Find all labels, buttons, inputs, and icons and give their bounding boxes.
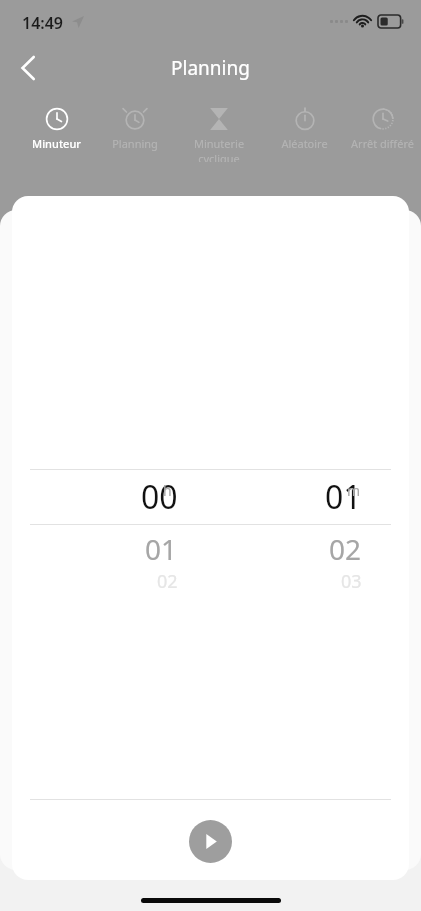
staticText: Minuterie cyclique [177,136,261,162]
staticText: Minuteur [32,136,81,151]
staticText: 03 [341,569,362,593]
button[interactable]: Aléatoire [262,100,346,162]
staticText: Planning [112,136,158,151]
button[interactable]: Arrêt différé [340,100,421,162]
button[interactable]: Start timer [189,820,232,863]
button[interactable]: 00 [58,472,178,522]
staticText: 01 [145,530,178,566]
staticText: m [347,481,361,500]
button[interactable]: Minuteur [14,100,98,162]
staticText: 02 [329,530,362,566]
staticText: Aléatoire [281,136,328,151]
staticText: 00 [141,475,178,519]
staticText: 14:49 [22,12,64,34]
button[interactable]: Back [6,46,50,90]
staticText: Planning [171,55,250,81]
staticText: h [163,481,172,500]
staticText: Arrêt différé [351,136,414,151]
button[interactable]: 01 [242,472,362,522]
button[interactable]: Minuterie cyclique [177,100,261,162]
staticText: 02 [157,569,178,593]
staticText: 01 [325,475,362,519]
button[interactable]: Planning [93,100,177,162]
